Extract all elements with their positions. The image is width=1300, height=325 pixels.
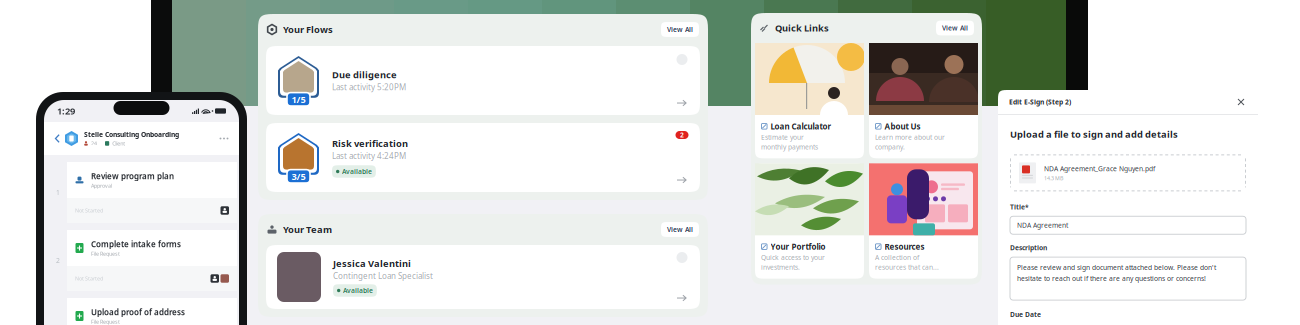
staticText: Available xyxy=(342,167,372,176)
button[interactable]: Back xyxy=(51,128,64,148)
staticText: monthly payments xyxy=(761,142,818,151)
staticText: 1 xyxy=(56,188,60,197)
staticText: Last activity 4:24PM xyxy=(332,151,406,161)
staticText: Contingent Loan Specialist xyxy=(333,271,433,281)
staticText: 3/5 xyxy=(291,170,305,182)
button[interactable]: Jessica Valentini xyxy=(266,245,700,309)
button[interactable]: Review program plan xyxy=(67,162,237,223)
button[interactable]: Loan Calculator xyxy=(755,43,864,158)
staticText: Due Date xyxy=(1010,310,1041,319)
staticText: Approval xyxy=(91,182,112,189)
button[interactable]: Complete intake forms xyxy=(67,230,237,291)
staticText: Review program plan xyxy=(91,171,174,181)
staticText: View All xyxy=(942,24,968,32)
staticText: 14.3 MB xyxy=(1044,174,1063,182)
button[interactable]: Your Portfolio xyxy=(755,163,864,279)
staticText: 1:29 xyxy=(57,105,75,117)
staticText: 2 xyxy=(680,131,684,139)
staticText: Learn more about our xyxy=(875,133,945,141)
staticText: A collection of xyxy=(875,253,919,262)
staticText: Resources xyxy=(884,241,924,252)
staticText: Description xyxy=(1010,243,1047,252)
staticText: File Request xyxy=(91,250,120,257)
button[interactable]: More options xyxy=(216,128,232,148)
staticText: View All xyxy=(667,25,693,34)
staticText: Last activity 5:20PM xyxy=(332,82,406,92)
staticText: Available xyxy=(343,286,373,295)
button[interactable]: Close xyxy=(1235,96,1247,108)
button[interactable]: 1/5 xyxy=(266,46,700,115)
button[interactable]: View All xyxy=(936,21,974,35)
staticText: 24 xyxy=(91,140,97,147)
staticText: 1/5 xyxy=(291,93,305,105)
staticText: NDA Agreement_Grace Nguyen.pdf xyxy=(1044,164,1155,173)
staticText: Upload a file to sign and add details xyxy=(1010,128,1178,140)
staticText: Quick Links xyxy=(775,22,829,34)
staticText: Complete intake forms xyxy=(91,239,181,249)
staticText: Stelle Consulting Onboarding xyxy=(84,130,179,139)
staticText: Not Started xyxy=(75,207,103,214)
staticText: About Us xyxy=(884,121,920,132)
staticText: hesitate to reach out if there are any q… xyxy=(1017,274,1206,283)
button[interactable]: About Us xyxy=(869,43,978,158)
staticText: View All xyxy=(667,225,693,234)
staticText: Estimate your xyxy=(761,133,804,141)
button[interactable]: Resources xyxy=(869,163,978,279)
staticText: Title* xyxy=(1010,202,1029,211)
staticText: Client xyxy=(112,140,125,147)
button[interactable]: 3/5 xyxy=(266,123,700,192)
staticText: File Request xyxy=(91,318,120,325)
staticText: Loan Calculator xyxy=(770,121,831,132)
staticText: investments. xyxy=(761,263,800,272)
button[interactable]: View All xyxy=(661,22,699,37)
button[interactable]: View All xyxy=(661,222,699,237)
staticText: Not Started xyxy=(75,275,103,282)
staticText: Jessica Valentini xyxy=(333,257,411,270)
staticText: 2 xyxy=(56,256,60,265)
staticText: Please review and sign document attached… xyxy=(1017,263,1216,272)
staticText: company. xyxy=(875,142,905,151)
staticText: Your Team xyxy=(283,223,332,236)
button[interactable]: Upload proof of address xyxy=(67,298,237,325)
staticText: Quick access to your xyxy=(761,253,825,262)
staticText: Your Flows xyxy=(283,23,333,36)
staticText: Due diligence xyxy=(332,68,397,81)
staticText: resources that can... xyxy=(875,263,939,272)
staticText: Risk verification xyxy=(332,137,408,150)
staticText: Your Portfolio xyxy=(770,241,825,252)
staticText: Upload proof of address xyxy=(91,307,185,317)
staticText: Edit E-Sign (Step 2) xyxy=(1009,98,1071,106)
staticText: NDA Agreement xyxy=(1017,221,1068,230)
